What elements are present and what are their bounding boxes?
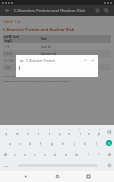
button[interactable]: Previous result xyxy=(82,57,89,64)
button[interactable]: c xyxy=(30,149,39,159)
button[interactable]: Back xyxy=(3,6,12,15)
staticText: ?123 xyxy=(3,164,9,167)
button[interactable]: Search xyxy=(102,6,111,15)
button[interactable]: j xyxy=(69,138,79,148)
button[interactable]: k xyxy=(80,138,90,148)
staticText: 1 xyxy=(6,128,8,131)
button[interactable]: Bookmark xyxy=(93,6,102,15)
button[interactable]: v xyxy=(40,149,49,159)
staticText: u xyxy=(68,131,71,136)
button[interactable]: 1 xyxy=(1,126,11,137)
button[interactable]: m xyxy=(72,149,82,159)
staticText: n xyxy=(65,152,68,157)
staticText: 5 xyxy=(49,128,51,131)
button[interactable]: 8 xyxy=(75,126,84,137)
staticText: , xyxy=(14,163,15,167)
staticText: m xyxy=(75,152,79,157)
staticText: 3 xyxy=(27,128,29,131)
staticText: ! xyxy=(88,152,89,157)
staticText: q xyxy=(5,131,8,136)
staticText: 3.1-10.0 xyxy=(4,59,14,63)
button[interactable]: b xyxy=(50,149,60,159)
staticText: 4 xyxy=(38,128,40,131)
staticText: Average risk xyxy=(41,52,57,56)
staticText: 0 xyxy=(99,128,101,131)
staticText: t xyxy=(49,131,51,136)
staticText: w xyxy=(16,131,19,136)
staticText: ? xyxy=(98,152,100,157)
staticText: Adapted from Pearson TA, Mensah GA, Alex… xyxy=(3,79,70,82)
staticText: 2 xyxy=(17,128,19,131)
staticText: Risk xyxy=(41,37,47,41)
staticText: z xyxy=(14,152,16,157)
button[interactable]: Backspace xyxy=(105,126,113,137)
button[interactable]: 3 xyxy=(23,126,33,137)
staticText: j xyxy=(74,141,75,146)
staticText: . xyxy=(101,163,102,167)
staticText: 9 xyxy=(89,128,91,131)
button[interactable]: 0 xyxy=(95,126,104,137)
staticText: a xyxy=(9,141,11,146)
button[interactable]: d xyxy=(25,138,35,148)
staticText: r xyxy=(38,131,40,136)
staticText: 8 xyxy=(79,128,81,131)
staticText: b xyxy=(54,152,57,157)
staticText: 6 xyxy=(59,128,61,131)
button[interactable]: Home xyxy=(52,171,63,182)
staticText: Table 1-4 xyxy=(3,19,20,24)
button[interactable]: 4 xyxy=(34,126,44,137)
staticText: h xyxy=(62,141,65,146)
button[interactable]: a xyxy=(5,138,14,148)
staticText: C-Reactive Protein and Nuclear Risk xyxy=(3,27,75,32)
staticText: hsCRP level (mg/L) xyxy=(4,35,19,43)
button[interactable]: Shift xyxy=(1,149,9,159)
staticText: v xyxy=(44,152,46,157)
button[interactable]: ?123 xyxy=(1,160,11,170)
button[interactable]: Recents xyxy=(83,171,94,182)
staticText: l xyxy=(96,141,97,146)
staticText: e xyxy=(27,131,29,136)
button[interactable]: 9 xyxy=(85,126,94,137)
staticText: o xyxy=(88,131,91,136)
button[interactable]: C-Reactive Protein xyxy=(26,58,82,63)
button[interactable]: ? xyxy=(94,149,104,159)
staticText: i xyxy=(80,131,81,136)
button[interactable]: Next result xyxy=(89,57,96,64)
button[interactable]: 7 xyxy=(65,126,74,137)
button[interactable]: l xyxy=(91,138,101,148)
staticText: 7 xyxy=(69,128,71,131)
button[interactable]: h xyxy=(58,138,68,148)
button[interactable]: Close search xyxy=(18,57,25,64)
staticText: g xyxy=(51,141,54,146)
staticText: High risk xyxy=(41,59,52,63)
button[interactable]: g xyxy=(47,138,57,148)
button[interactable]: 2 xyxy=(12,126,22,137)
button[interactable]: z xyxy=(10,149,19,159)
button[interactable]: x xyxy=(20,149,29,159)
button[interactable]: Back xyxy=(20,171,31,182)
staticText: <1.0 xyxy=(4,45,10,49)
button[interactable]: Search xyxy=(104,138,113,148)
button[interactable]: Comma xyxy=(12,160,17,170)
staticText: >10.0 xyxy=(4,66,11,70)
staticText: d xyxy=(29,141,32,146)
button[interactable]: ! xyxy=(83,149,93,159)
button[interactable]: Shift xyxy=(105,149,113,159)
button[interactable]: n xyxy=(61,149,71,159)
staticText: Low risk xyxy=(41,45,51,49)
staticText: s xyxy=(19,141,21,146)
button[interactable]: f xyxy=(36,138,46,148)
button[interactable]: Emoji xyxy=(105,160,113,170)
button[interactable]: 5 xyxy=(45,126,54,137)
staticText: hsCRP, high-sensitivity C-reactive prote… xyxy=(3,74,50,77)
staticText: y xyxy=(59,131,61,136)
button[interactable]: s xyxy=(15,138,24,148)
staticText: f xyxy=(40,141,42,146)
staticText: c xyxy=(34,152,36,157)
staticText: 1.0-3.0 xyxy=(4,52,13,56)
staticText: k xyxy=(84,141,86,146)
button[interactable]: 6 xyxy=(55,126,64,137)
